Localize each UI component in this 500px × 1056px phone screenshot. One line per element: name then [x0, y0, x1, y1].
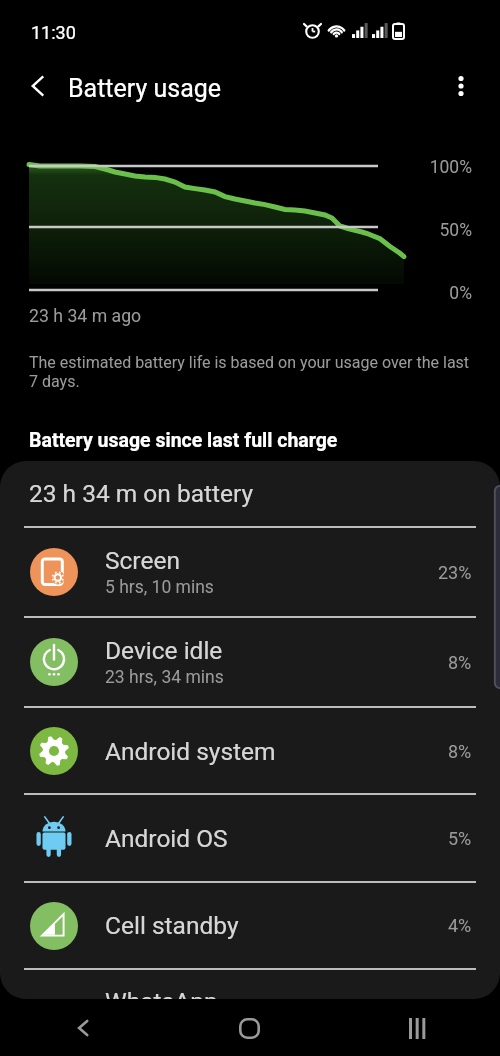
staticText: WhatsApp [105, 987, 218, 999]
button[interactable]: Back [0, 1000, 166, 1056]
staticText: Battery usage since last full charge [29, 429, 338, 452]
staticText: Android system [105, 737, 276, 766]
staticText: 50% [372, 220, 472, 241]
button[interactable]: Device idle [0, 618, 500, 706]
button[interactable]: Android system [0, 708, 500, 794]
button[interactable]: More options [441, 66, 481, 106]
staticText: 23 hrs, 34 mins [105, 667, 224, 688]
staticText: Screen [105, 546, 180, 575]
button[interactable]: Cell standby [0, 883, 500, 968]
staticText: 23% [438, 562, 472, 583]
button[interactable]: WhatsApp [0, 970, 500, 999]
staticText: 11:30 [31, 22, 76, 43]
staticText: The estimated battery life is based on y… [29, 353, 470, 391]
button[interactable]: Back [18, 66, 58, 106]
staticText: Android OS [105, 824, 228, 853]
staticText: 5 hrs, 10 mins [105, 577, 214, 598]
staticText: 0% [372, 283, 472, 304]
staticText: 8% [448, 741, 472, 762]
staticText: 23 h 34 m ago [29, 306, 142, 327]
button[interactable]: Recent apps [333, 1000, 500, 1056]
button[interactable]: Android OS [0, 795, 500, 881]
staticText: 4% [448, 915, 472, 936]
staticText: Device idle [105, 636, 223, 665]
staticText: 100% [372, 157, 472, 178]
staticText: Battery usage [68, 74, 222, 103]
staticText: 23 h 34 m on battery [29, 479, 254, 508]
staticText: Cell standby [105, 911, 239, 940]
staticText: 8% [448, 652, 472, 673]
staticText: 5% [448, 828, 472, 849]
button[interactable]: Home [166, 1000, 333, 1056]
button[interactable]: Screen [0, 528, 500, 616]
